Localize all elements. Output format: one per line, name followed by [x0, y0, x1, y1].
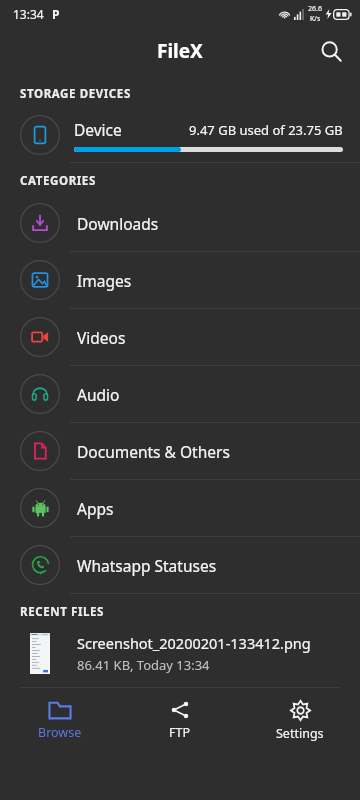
button[interactable]: Whatsapp Statuses [0, 537, 360, 593]
staticText: Apps [77, 498, 114, 519]
button[interactable]: Screenshot_20200201-133412.png [0, 626, 360, 680]
staticText: Settings [276, 725, 324, 742]
staticText: RECENT FILES [20, 604, 104, 620]
button[interactable]: Device [0, 108, 360, 162]
staticText: Whatsapp Statuses [77, 555, 217, 576]
button[interactable]: Documents & Others [0, 423, 360, 479]
staticText: 26.6 [308, 4, 322, 14]
staticText: 86.41 KB, Today 13:34 [77, 656, 210, 674]
staticText: Device [74, 119, 122, 140]
staticText: Documents & Others [77, 441, 230, 462]
button[interactable]: Downloads [0, 195, 360, 251]
staticText: FileX [157, 38, 203, 64]
staticText: STORAGE DEVICES [20, 86, 131, 102]
staticText: FTP [169, 724, 191, 741]
button[interactable]: Browse [0, 694, 120, 747]
staticText: Browse [38, 724, 82, 741]
button[interactable]: FTP [120, 694, 240, 747]
button[interactable]: Images [0, 252, 360, 308]
staticText: K/s [310, 14, 321, 24]
staticText: Audio [77, 384, 120, 405]
staticText: 9.47 GB used of 23.75 GB [189, 121, 343, 139]
button[interactable]: Settings [240, 694, 360, 748]
button[interactable]: Apps [0, 480, 360, 536]
staticText: Videos [77, 327, 126, 348]
staticText: 13:34 [13, 6, 44, 22]
button[interactable]: Videos [0, 309, 360, 365]
staticText: Screenshot_20200201-133412.png [77, 633, 311, 653]
staticText: Images [77, 270, 132, 291]
staticText: P [52, 6, 60, 22]
staticText: CATEGORIES [20, 173, 96, 189]
staticText: Downloads [77, 213, 159, 234]
button[interactable]: Search [310, 30, 352, 72]
button[interactable]: Audio [0, 366, 360, 422]
